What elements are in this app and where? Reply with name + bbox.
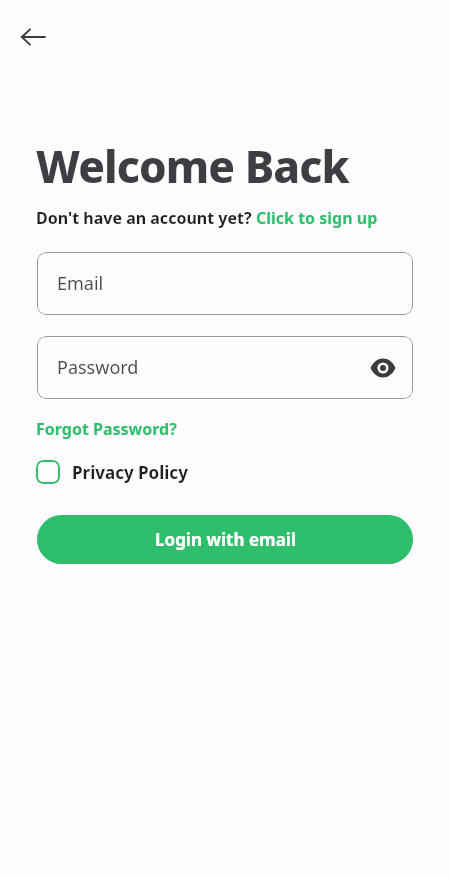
button[interactable]: Back (10, 14, 56, 60)
button[interactable]: Show password (363, 348, 403, 388)
staticText: Password (57, 355, 139, 380)
staticText: Click to sign up (256, 207, 378, 229)
button[interactable]: Forgot Password? (36, 418, 177, 440)
staticText: Login with email (155, 528, 296, 551)
button[interactable]: Click to sign up (256, 207, 378, 229)
staticText: Forgot Password? (36, 418, 177, 440)
button[interactable]: Login with email (37, 515, 413, 564)
staticText: Privacy Policy (72, 461, 188, 484)
staticText: Email (57, 271, 104, 296)
button[interactable]: Password (37, 336, 413, 399)
staticText: Welcome Back (36, 136, 349, 196)
button[interactable]: Email (37, 252, 413, 315)
button[interactable]: Privacy Policy (36, 458, 196, 486)
staticText: Don't have an account yet? (36, 207, 256, 229)
